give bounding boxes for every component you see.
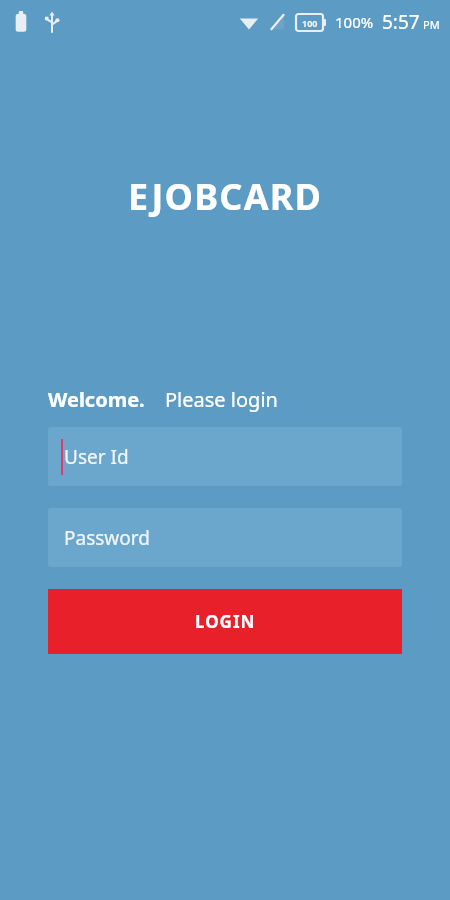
staticText: 100% <box>335 12 374 32</box>
staticText: EJOBCARD <box>0 172 450 221</box>
button[interactable]: User Id <box>48 427 402 486</box>
staticText: User Id <box>64 444 129 470</box>
staticText: 5:57 <box>382 9 420 35</box>
staticText: 100 <box>302 17 318 29</box>
button[interactable]: Password <box>48 508 402 567</box>
staticText: LOGIN <box>195 610 256 633</box>
button[interactable]: LOGIN <box>48 589 402 654</box>
staticText: Welcome. <box>48 386 145 413</box>
staticText: Password <box>64 525 150 551</box>
staticText: PM <box>423 17 440 32</box>
staticText: Please login <box>165 386 278 413</box>
